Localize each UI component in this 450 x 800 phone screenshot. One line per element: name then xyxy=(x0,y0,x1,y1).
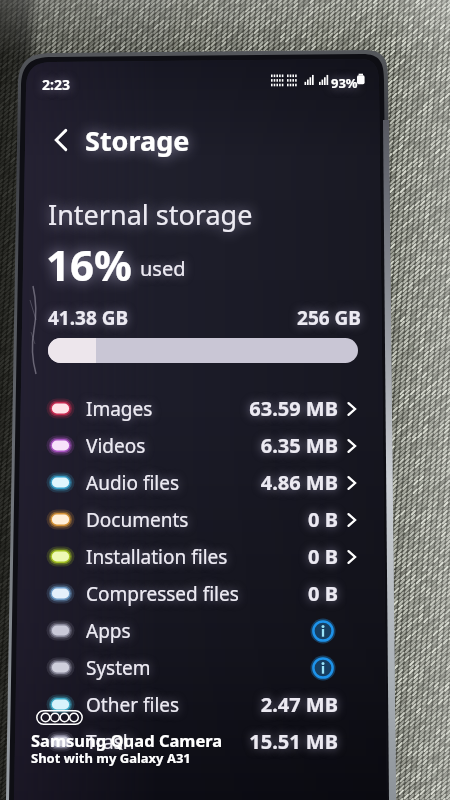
button[interactable]: Trash xyxy=(30,723,370,760)
staticText: Installation files xyxy=(86,544,228,570)
staticText: Trash xyxy=(86,729,135,755)
staticText: Storage xyxy=(85,122,190,159)
button[interactable]: Apps xyxy=(30,612,370,649)
staticText: System xyxy=(86,655,151,681)
staticText: 4.86 MB xyxy=(180,469,338,496)
button[interactable]: Back xyxy=(46,125,76,155)
button[interactable]: Installation files xyxy=(30,538,370,575)
staticText: 0 B xyxy=(180,506,338,533)
staticText: Other files xyxy=(86,692,180,718)
staticText: used xyxy=(140,255,186,282)
staticText: 0 B xyxy=(180,580,338,607)
staticText: Audio files xyxy=(86,470,180,496)
button[interactable]: Images xyxy=(30,390,370,427)
staticText: 6.35 MB xyxy=(180,432,338,459)
staticText: Shot with my Galaxy A31 xyxy=(31,749,191,767)
staticText: Samsung Quad Camera xyxy=(31,729,223,751)
button[interactable]: Other files xyxy=(30,686,370,723)
staticText: Compressed files xyxy=(86,581,239,607)
staticText: Internal storage xyxy=(48,196,253,233)
staticText: Apps xyxy=(86,618,131,644)
button[interactable]: Audio files xyxy=(30,464,370,501)
staticText: 15.51 MB xyxy=(180,728,338,755)
staticText: Images xyxy=(86,396,153,422)
button[interactable] xyxy=(48,338,358,363)
staticText: Videos xyxy=(86,433,146,459)
staticText: 2:23 xyxy=(42,75,70,94)
staticText: 256 GB xyxy=(233,305,361,331)
button[interactable]: Back xyxy=(46,120,190,160)
staticText: 63.59 MB xyxy=(180,395,338,422)
staticText: 2.47 MB xyxy=(180,691,338,718)
button[interactable]: Info xyxy=(311,619,335,643)
staticText: 16% xyxy=(46,236,132,293)
button[interactable]: Documents xyxy=(30,501,370,538)
staticText: 41.38 GB xyxy=(48,305,129,331)
staticText: Documents xyxy=(86,507,189,533)
button[interactable]: Compressed files xyxy=(30,575,370,612)
staticText: 93% xyxy=(331,74,358,92)
button[interactable]: Videos xyxy=(30,427,370,464)
staticText: 0 B xyxy=(180,543,338,570)
button[interactable]: System xyxy=(30,649,370,686)
button[interactable]: Info xyxy=(311,656,335,680)
